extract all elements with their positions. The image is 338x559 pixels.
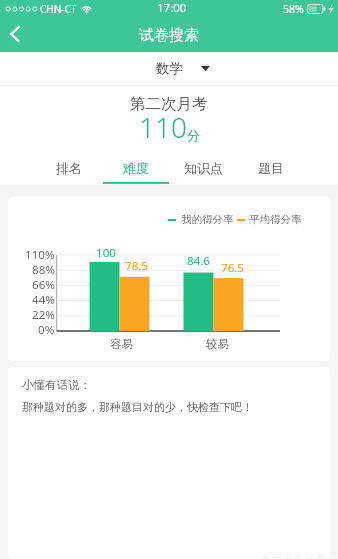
staticText: 我的得分率 bbox=[181, 213, 234, 226]
staticText: 较易 bbox=[206, 337, 229, 351]
staticText: 88% bbox=[32, 262, 55, 277]
staticText: 0% bbox=[38, 322, 55, 337]
staticText: 110 bbox=[139, 108, 187, 146]
staticText: 44% bbox=[32, 292, 55, 307]
button[interactable]: 知识点 bbox=[169, 152, 237, 185]
staticText: 难度 bbox=[123, 160, 149, 176]
button[interactable]: 排名 bbox=[35, 152, 102, 185]
staticText: 第二次月考 bbox=[130, 94, 208, 114]
button[interactable]: 题目 bbox=[237, 152, 305, 185]
staticText: 试卷搜索 bbox=[139, 26, 199, 45]
staticText: 查看更多试卷 bbox=[260, 552, 326, 559]
staticText: 110% bbox=[25, 247, 55, 262]
staticText: 容易 bbox=[110, 337, 133, 351]
staticText: 58% bbox=[283, 2, 304, 16]
staticText: CHN-CT bbox=[40, 2, 77, 16]
button[interactable]: Back bbox=[0, 18, 32, 52]
button[interactable]: 查看更多试卷 bbox=[260, 552, 326, 559]
staticText: 84.6 bbox=[187, 253, 211, 269]
staticText: 22% bbox=[32, 307, 55, 322]
staticText: 知识点 bbox=[184, 160, 223, 176]
staticText: 78.5 bbox=[125, 258, 149, 274]
staticText: 那种题对的多，那种题目对的少，快检查下吧！ bbox=[22, 400, 253, 414]
staticText: 17:00 bbox=[157, 0, 187, 16]
staticText: 小懂有话说： bbox=[22, 378, 91, 392]
staticText: 排名 bbox=[56, 160, 82, 176]
staticText: 题目 bbox=[258, 160, 284, 176]
staticText: 66% bbox=[32, 277, 55, 292]
button[interactable]: 难度 bbox=[102, 152, 169, 185]
staticText: 76.5 bbox=[221, 260, 245, 276]
staticText: 100 bbox=[96, 245, 116, 261]
button[interactable]: 数学 bbox=[144, 55, 222, 82]
staticText: 分 bbox=[187, 127, 200, 143]
staticText: 数学 bbox=[156, 60, 183, 77]
staticText: 平均得分率 bbox=[249, 213, 302, 226]
